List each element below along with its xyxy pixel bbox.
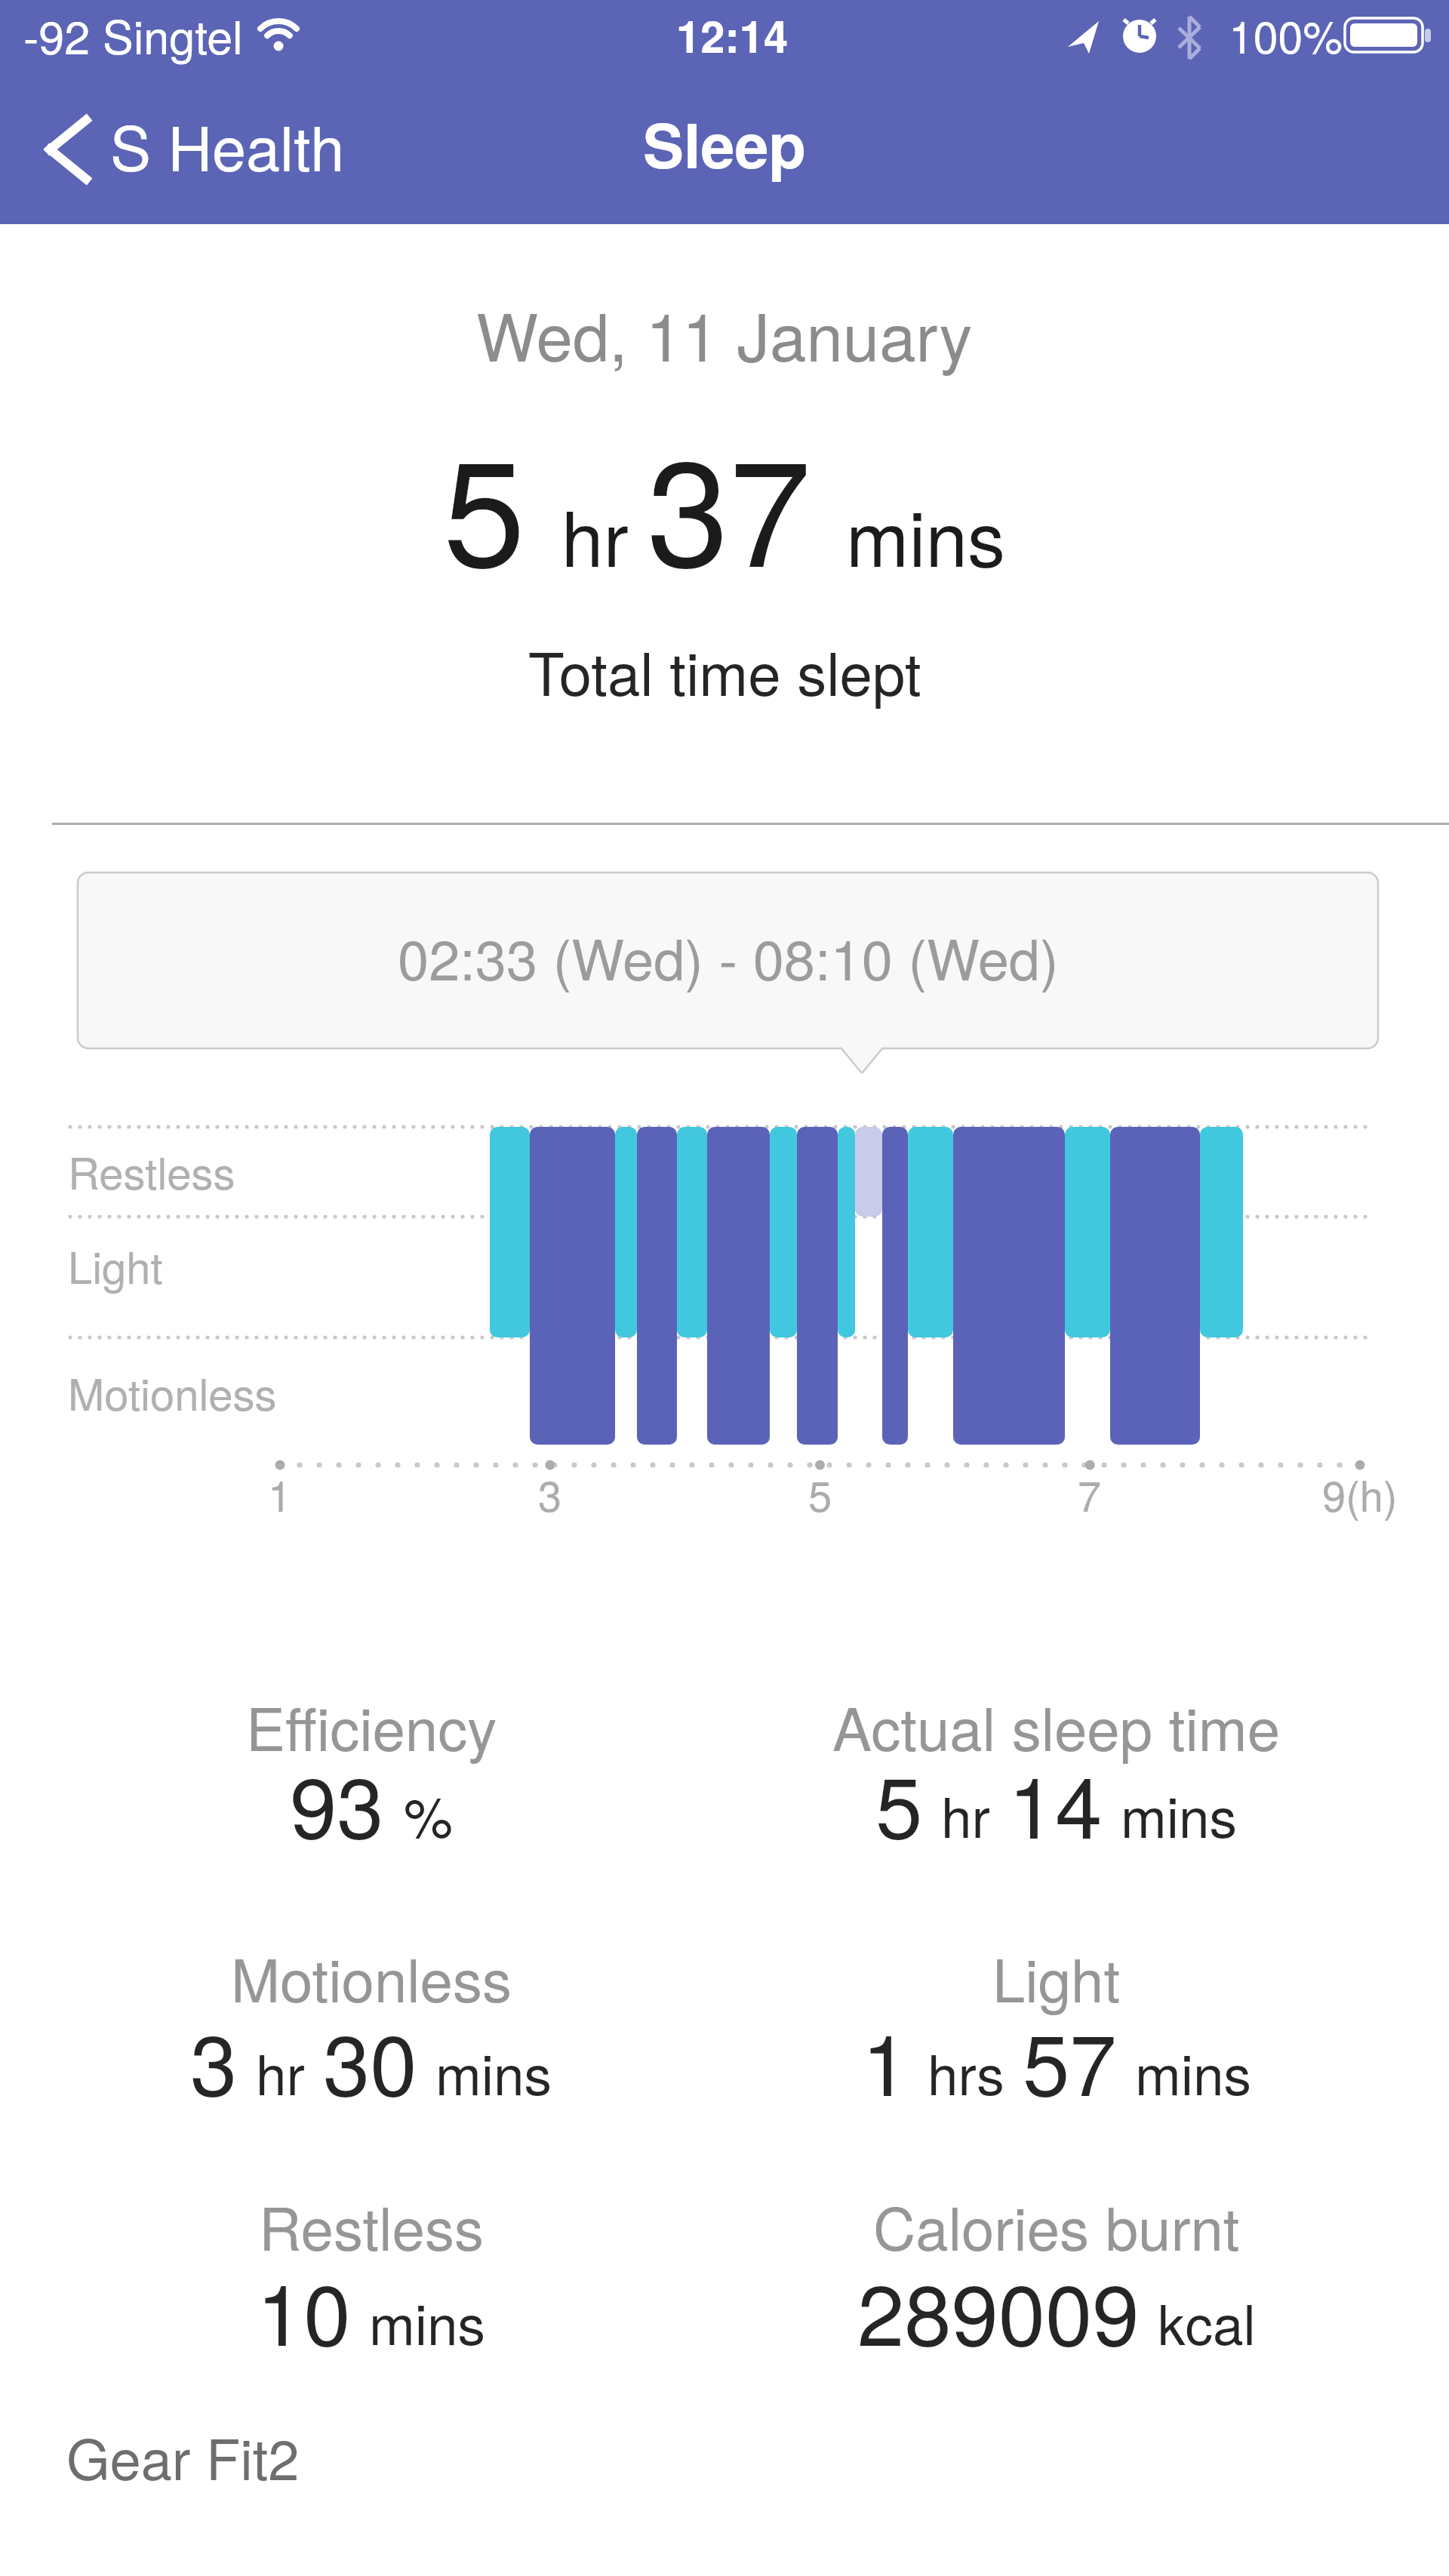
staticText: 5 xyxy=(443,397,525,609)
staticText: kcal xyxy=(1158,2282,1256,2361)
staticText: 9(h) xyxy=(1322,1463,1398,1524)
staticText: Light xyxy=(992,1934,1121,2019)
button[interactable] xyxy=(78,873,1378,1048)
staticText: Calories burnt xyxy=(873,2183,1240,2267)
staticText: Restless xyxy=(259,2183,484,2267)
staticText: 289009 xyxy=(857,2248,1140,2369)
staticText: 57 xyxy=(1023,1999,1117,2119)
staticText: 7 xyxy=(1078,1463,1102,1524)
staticText: 93 xyxy=(290,1741,384,1862)
staticText: mins xyxy=(369,2282,486,2361)
staticText: % xyxy=(404,1774,453,1854)
staticText: Wed, 11 January xyxy=(476,286,973,380)
staticText: Total time slept xyxy=(528,628,921,712)
staticText: mins xyxy=(1121,1774,1238,1854)
staticText: mins xyxy=(1135,2032,1252,2111)
staticText: 10 xyxy=(257,2248,351,2369)
staticText: Sleep xyxy=(643,100,807,187)
staticText: 3 xyxy=(190,1999,238,2119)
staticText: Gear Fit2 xyxy=(66,2416,300,2496)
staticText: 100% xyxy=(1229,2,1343,66)
staticText: hrs xyxy=(928,2032,1004,2111)
staticText: 12:14 xyxy=(676,4,789,66)
staticText: hr xyxy=(941,1774,990,1854)
staticText: 30 xyxy=(323,1999,417,2119)
staticText: 02:33 (Wed) - 08:10 (Wed) xyxy=(398,916,1059,996)
staticText: 1 xyxy=(862,1999,909,2119)
staticText: 3 xyxy=(538,1463,562,1524)
staticText: Efficiency xyxy=(246,1683,497,1768)
staticText: 5 xyxy=(875,1741,923,1862)
staticText: 37 xyxy=(647,397,811,609)
staticText: Restless xyxy=(68,1139,235,1202)
staticText: -92 Singtel xyxy=(23,2,243,67)
staticText: S Health xyxy=(110,101,345,189)
staticText: Light xyxy=(68,1233,163,1296)
staticText: 5 xyxy=(808,1463,832,1524)
staticText: Actual sleep time xyxy=(832,1683,1281,1768)
staticText: 1 xyxy=(268,1463,292,1524)
staticText: mins xyxy=(846,480,1006,588)
staticText: Motionless xyxy=(68,1360,277,1423)
staticText: mins xyxy=(435,2032,552,2111)
staticText: 14 xyxy=(1008,1741,1103,1862)
staticText: hr xyxy=(256,2032,305,2111)
button[interactable] xyxy=(23,98,347,204)
staticText: Motionless xyxy=(231,1934,512,2019)
staticText: hr xyxy=(561,480,629,588)
